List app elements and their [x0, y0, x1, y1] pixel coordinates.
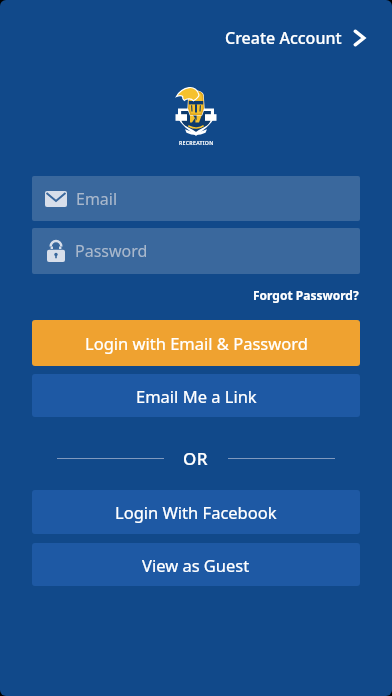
staticText: Password: [75, 240, 148, 262]
staticText: View as Guest: [142, 554, 250, 576]
button[interactable]: Create Account: [225, 27, 365, 49]
button[interactable]: Forgot Password?: [253, 287, 359, 303]
button[interactable]: Login with Email & Password: [32, 320, 360, 366]
staticText: Login With Facebook: [115, 501, 277, 523]
staticText: Email: [76, 188, 118, 210]
staticText: Create Account: [225, 27, 342, 49]
staticText: Forgot Password?: [253, 287, 359, 303]
button[interactable]: Password: [32, 228, 360, 274]
button[interactable]: Email Me a Link: [32, 374, 360, 417]
button[interactable]: Login With Facebook: [32, 490, 360, 534]
staticText: Email Me a Link: [136, 385, 257, 407]
staticText: RECREATION: [179, 139, 214, 146]
staticText: Login with Email & Password: [85, 332, 308, 354]
staticText: OR: [183, 447, 209, 470]
button[interactable]: Email: [32, 176, 360, 221]
button[interactable]: View as Guest: [32, 543, 360, 586]
